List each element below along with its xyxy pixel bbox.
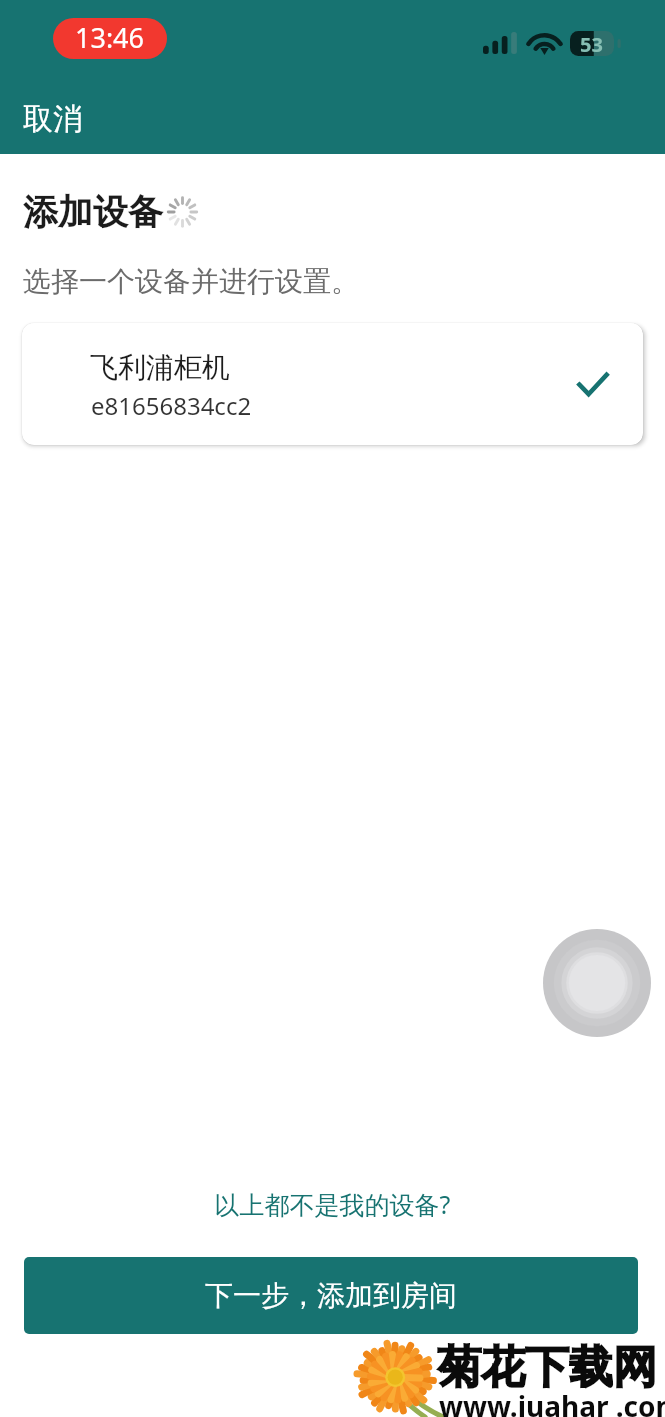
staticText: 取消 [23,100,83,138]
button[interactable]: 下一步，添加到房间 [24,1257,638,1334]
staticText: 菊花下载网 [437,1340,657,1395]
staticText: 53 [580,31,603,58]
other: Selected [576,367,610,397]
button[interactable]: 以上都不是我的设备? [0,1176,665,1227]
staticText: 选择一个设备并进行设置。 [23,264,359,299]
staticText: e81656834cc2 [91,389,252,422]
staticText: 下一步，添加到房间 [205,1278,457,1313]
button[interactable]: 取消 [5,92,101,146]
button[interactable]: 飞利浦柜机 [22,323,643,445]
staticText: 飞利浦柜机 [90,350,230,385]
staticText: 添加设备 [23,190,163,234]
staticText: www.juahar .com [439,1387,665,1417]
staticText: 13:46 [75,19,145,56]
